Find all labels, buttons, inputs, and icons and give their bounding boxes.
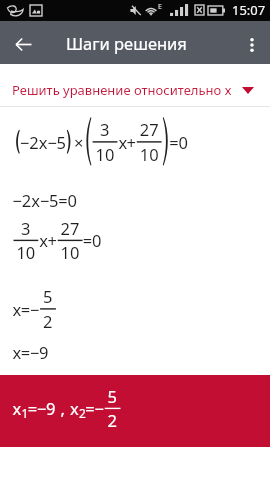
staticText: Шаги решения — [66, 32, 187, 54]
staticText: Решить уравнение относительно х — [12, 81, 232, 99]
button[interactable]: Решить уравнение относительно х — [0, 64, 270, 106]
button[interactable]: More options — [227, 21, 270, 64]
button[interactable]: Back — [0, 21, 50, 64]
staticText: 15:07 — [232, 1, 266, 19]
staticText: E — [158, 2, 162, 12]
